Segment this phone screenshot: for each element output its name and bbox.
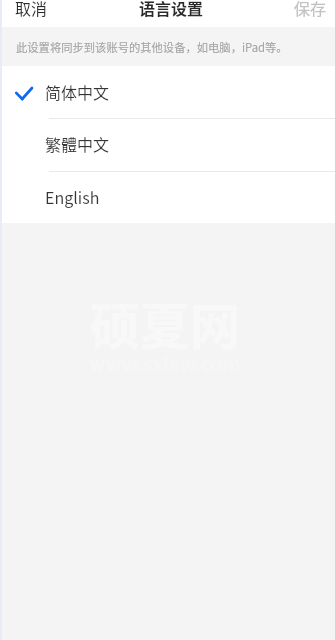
- staticText: 语言设置: [139, 0, 204, 19]
- button[interactable]: 保存: [279, 0, 335, 27]
- staticText: English: [45, 185, 100, 208]
- button[interactable]: English: [0, 172, 335, 223]
- staticText: 取消: [15, 0, 48, 19]
- button[interactable]: 取消: [0, 0, 63, 27]
- staticText: 繁體中文: [45, 132, 110, 155]
- button[interactable]: 简体中文: [0, 66, 335, 118]
- staticText: 简体中文: [45, 80, 110, 103]
- staticText: 保存: [294, 0, 327, 19]
- button[interactable]: 繁體中文: [0, 119, 335, 171]
- staticText: 此设置将同步到该账号的其他设备，如电脑，iPad等。: [16, 39, 288, 55]
